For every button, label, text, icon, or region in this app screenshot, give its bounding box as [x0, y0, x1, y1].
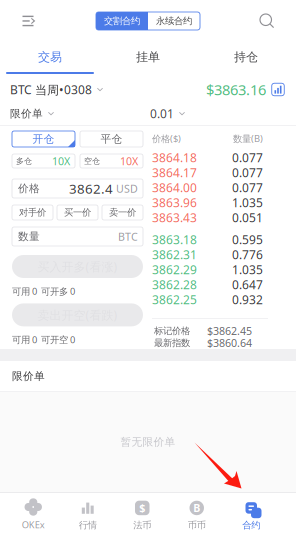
button[interactable]: 合约 [224, 493, 278, 538]
staticText: 3864.17 [152, 164, 197, 180]
button[interactable]: 开仓 [12, 131, 75, 147]
staticText: 挂单 [136, 50, 160, 64]
button[interactable]: 行情 [60, 493, 115, 538]
staticText: 3863.43 [152, 209, 197, 225]
staticText: 可用 0 可开多 0 [12, 285, 75, 297]
staticText: 币币 [188, 519, 206, 531]
staticText: 限价单 [12, 369, 45, 383]
button[interactable]: Chart [266, 77, 290, 101]
button[interactable]: 3863.18 [147, 232, 296, 247]
staticText: 卖一价 [109, 207, 136, 218]
staticText: 0.077 [232, 164, 263, 180]
staticText: 3862.4 [69, 180, 113, 197]
staticText: 0.595 [232, 231, 263, 247]
staticText: 3863.96 [152, 194, 197, 210]
staticText: 10X [52, 154, 70, 168]
staticText: 暂无限价单 [120, 435, 175, 448]
staticText: 3862.29 [152, 261, 197, 277]
button[interactable]: 对手价 [12, 205, 53, 220]
staticText: 法币 [133, 519, 151, 531]
staticText: 数量(B) [233, 132, 263, 145]
button[interactable]: 买一价 [57, 205, 98, 220]
staticText: OKEx [22, 518, 45, 531]
staticText: 最新指数 [154, 337, 190, 349]
staticText: USD [113, 181, 138, 196]
button[interactable]: 3862.28 [147, 277, 296, 292]
button[interactable]: 卖出开空(看跌) [12, 303, 143, 326]
staticText: 价格 [18, 182, 40, 195]
staticText: 空仓 [84, 156, 100, 166]
staticText: 可用 0 可开空 0 [12, 333, 75, 346]
button[interactable]: $ [115, 493, 169, 538]
staticText: 3864.00 [152, 179, 197, 195]
staticText: 1.035 [232, 194, 263, 210]
button[interactable]: 挂单 [99, 42, 197, 77]
button[interactable]: OKEx [6, 493, 60, 538]
staticText: 限价单 [10, 107, 43, 120]
staticText: 0.01 [150, 106, 174, 121]
staticText: 买一价 [64, 207, 91, 218]
staticText: 合约 [242, 519, 260, 531]
staticText: 0.932 [232, 291, 263, 307]
staticText: 0.077 [232, 179, 263, 195]
staticText: BTC [118, 229, 138, 244]
staticText: 10X [120, 154, 138, 168]
staticText: 0.051 [232, 209, 263, 225]
staticText: 0.647 [232, 276, 263, 292]
staticText: 交易 [38, 50, 62, 64]
staticText: BTC 当周•0308 [10, 81, 92, 97]
staticText: 开仓 [32, 132, 54, 145]
staticText: 多仓 [16, 156, 32, 166]
button[interactable]: BTC 当周•0308 [10, 76, 140, 102]
button[interactable]: 3864.18 [147, 150, 296, 165]
staticText: 0.776 [232, 246, 263, 262]
staticText: 数量 [18, 230, 40, 243]
staticText: 交割合约 [104, 15, 140, 27]
staticText: 3864.18 [152, 149, 197, 165]
button[interactable]: Menu [10, 4, 48, 38]
staticText: B [193, 501, 200, 515]
button[interactable]: 多仓 [12, 154, 75, 168]
staticText: 行情 [79, 519, 97, 531]
button[interactable]: B [169, 493, 224, 538]
staticText: 价格($) [152, 132, 181, 145]
button[interactable]: 限价单 [10, 102, 150, 125]
staticText: 持仓 [234, 50, 258, 64]
staticText: 平仓 [100, 132, 122, 145]
staticText: $3862.45 [207, 324, 252, 338]
button[interactable]: 买入开多(看涨) [12, 255, 143, 278]
staticText: 1.035 [232, 261, 263, 277]
staticText: 0.077 [232, 149, 263, 165]
button[interactable]: 3863.96 [147, 195, 296, 210]
button[interactable]: 0.01 [150, 102, 250, 125]
button[interactable]: 3864.17 [147, 165, 296, 180]
button[interactable]: 持仓 [197, 42, 295, 77]
staticText: 3862.25 [152, 291, 197, 307]
staticText: $3860.64 [207, 336, 252, 350]
button[interactable]: 空仓 [80, 154, 143, 168]
button[interactable]: 卖一价 [102, 205, 143, 220]
staticText: 3862.28 [152, 276, 197, 292]
staticText: 3862.31 [152, 246, 197, 262]
button[interactable]: 交易 [1, 42, 99, 77]
staticText: 标记价格 [154, 325, 190, 337]
staticText: 对手价 [19, 207, 46, 218]
button[interactable]: 平仓 [80, 131, 143, 147]
button[interactable]: 3864.00 [147, 180, 296, 195]
staticText: 永续合约 [156, 15, 192, 27]
button[interactable]: 3863.43 [147, 210, 296, 225]
button[interactable]: Search [248, 4, 286, 38]
button[interactable]: 3862.29 [147, 262, 296, 277]
button[interactable]: 3862.25 [147, 292, 296, 307]
button[interactable]: 3862.31 [147, 247, 296, 262]
staticText: $ [139, 501, 145, 515]
staticText: $3863.16 [206, 80, 266, 99]
staticText: 3863.18 [152, 231, 197, 247]
